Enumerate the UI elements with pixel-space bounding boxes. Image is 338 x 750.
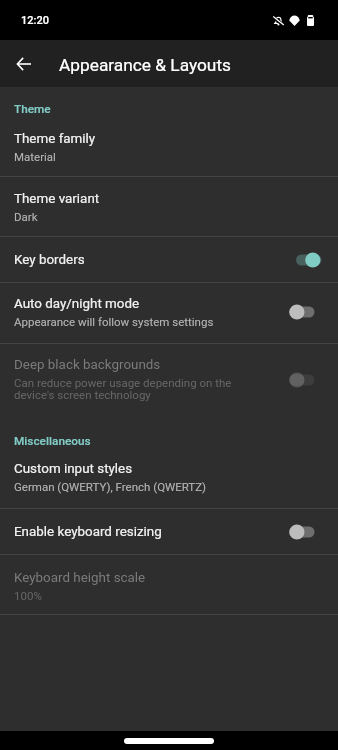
button[interactable]: Navigate up [9,49,39,79]
staticText: German (QWERTY), French (QWERTZ) [14,480,207,493]
button[interactable]: Deep black backgrounds [0,344,338,419]
staticText: Theme family [14,131,96,147]
button[interactable]: Keyboard height scale [0,555,338,614]
button[interactable]: Custom input styles [0,450,338,508]
staticText: Key borders [14,252,85,268]
staticText: 100% [14,589,42,602]
staticText: Dark [14,210,38,223]
staticText: Appearance & Layouts [59,55,231,75]
staticText: Custom input styles [14,461,133,477]
staticText: Miscellaneous [14,434,91,448]
button[interactable]: Theme variant [0,177,338,236]
staticText: 12:20 [21,14,49,27]
staticText: Theme [14,102,51,116]
staticText: Material [14,150,56,163]
staticText: Keyboard height scale [14,570,146,586]
staticText: Theme variant [14,191,100,207]
button[interactable]: Auto day/night mode [0,283,338,343]
button[interactable]: Enable keyboard resizing [0,509,338,554]
staticText: Enable keyboard resizing [14,524,162,540]
staticText: Appearance will follow system settings [14,315,214,328]
staticText: Can reduce power usage depending on the … [14,376,242,401]
staticText: Auto day/night mode [14,296,140,312]
button[interactable]: Key borders [0,237,338,282]
button[interactable]: Theme family [0,118,338,176]
staticText: Deep black backgrounds [14,357,161,373]
